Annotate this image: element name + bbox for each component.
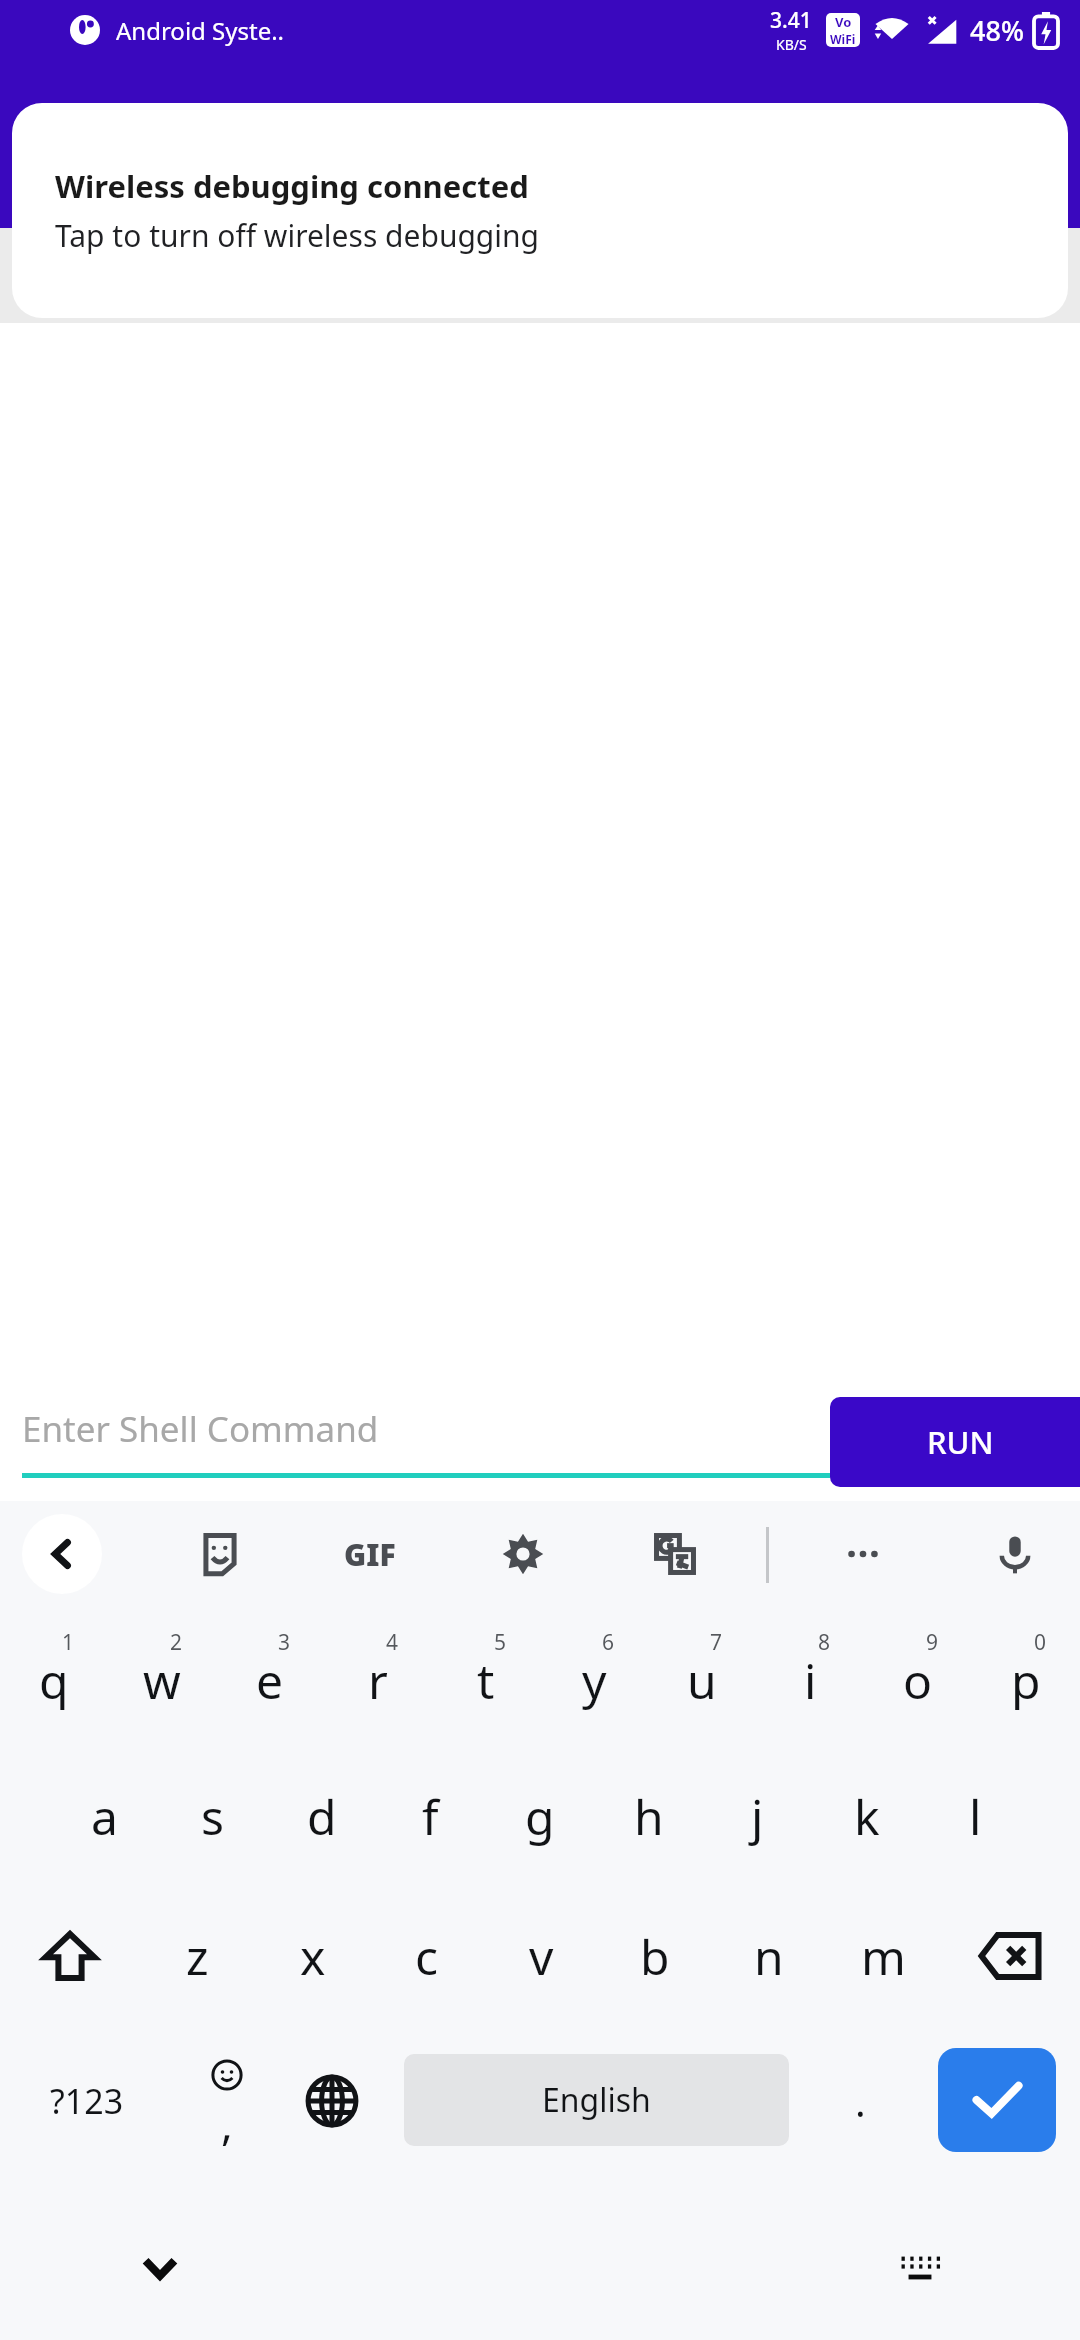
staticText: WiFi [830, 31, 856, 47]
button[interactable]: g [485, 1746, 594, 1886]
button[interactable]: f [376, 1746, 485, 1886]
other: Settings [501, 1532, 545, 1576]
button[interactable]: More options [823, 1514, 903, 1594]
staticText: 48% [970, 12, 1024, 49]
staticText: d [307, 1784, 337, 1849]
staticText: KB/S [776, 35, 807, 54]
staticText: . [855, 2074, 866, 2128]
staticText: u [687, 1648, 717, 1713]
staticText: , [221, 2093, 233, 2153]
staticText: z [186, 1924, 209, 1989]
button[interactable]: Enter Shell Command [22, 1381, 830, 1501]
button[interactable]: s [158, 1746, 267, 1886]
staticText: r [368, 1648, 388, 1713]
staticText: 2 [170, 1628, 183, 1657]
button[interactable]: x [255, 1886, 370, 2026]
other: More options [841, 1532, 885, 1576]
staticText: t [477, 1648, 495, 1713]
button[interactable]: c [370, 1886, 484, 2026]
button[interactable]: b [598, 1886, 712, 2026]
staticText: n [754, 1924, 784, 1989]
staticText: s [201, 1784, 224, 1849]
staticText: 7 [710, 1628, 723, 1657]
button[interactable]: j [703, 1746, 812, 1886]
staticText: ?123 [50, 2078, 124, 2124]
button[interactable]: Settings [483, 1514, 563, 1594]
staticText: j [751, 1784, 764, 1849]
staticText: 3.41 [770, 6, 812, 35]
button[interactable]: h [594, 1746, 703, 1886]
staticText: g [525, 1784, 555, 1849]
button[interactable]: 4 [324, 1606, 432, 1746]
staticText: x [300, 1924, 326, 1989]
button[interactable]: Change language [282, 2026, 382, 2176]
button[interactable]: Shift [0, 1886, 140, 2026]
button[interactable]: GIF [330, 1514, 410, 1594]
staticText: c [415, 1924, 439, 1989]
staticText: y [582, 1648, 607, 1713]
button[interactable]: Switch keyboard [880, 2228, 960, 2308]
staticText: 5 [494, 1628, 507, 1657]
staticText: Enter Shell Command [22, 1405, 379, 1453]
button[interactable]: 6 [540, 1606, 648, 1746]
button[interactable]: n [712, 1886, 826, 2026]
button[interactable]: RUN [830, 1397, 1080, 1487]
staticText: 3 [278, 1628, 291, 1657]
staticText: i [804, 1648, 817, 1713]
staticText: 1 [62, 1628, 75, 1657]
staticText: w [143, 1648, 181, 1713]
staticText: RUN [927, 1421, 994, 1463]
staticText: 9 [926, 1628, 939, 1657]
button[interactable]: 5 [432, 1606, 540, 1746]
button[interactable]: Back [22, 1514, 102, 1594]
staticText: f [422, 1784, 439, 1849]
staticText: m [861, 1924, 906, 1989]
button[interactable]: 1 [0, 1606, 108, 1746]
button[interactable]: 2 [108, 1606, 216, 1746]
button[interactable]: Enter [938, 2048, 1056, 2152]
staticText: v [529, 1924, 554, 1989]
staticText: English [542, 2078, 651, 2122]
staticText: b [640, 1924, 670, 1989]
other: Voice input [993, 1532, 1037, 1576]
staticText: 0 [1034, 1628, 1047, 1657]
staticText: 6 [602, 1628, 615, 1657]
button[interactable]: English [404, 2054, 789, 2146]
button[interactable]: 7 [648, 1606, 756, 1746]
staticText: Tap to turn off wireless debugging [55, 215, 540, 256]
button[interactable]: ?123 [22, 2026, 152, 2176]
button[interactable]: Backspace [940, 1886, 1080, 2026]
staticText: Android Syste.. [116, 14, 285, 47]
staticText: k [854, 1784, 880, 1849]
staticText: q [39, 1648, 69, 1713]
staticText: e [256, 1648, 284, 1713]
staticText: a [91, 1784, 118, 1849]
button[interactable]: 9 [864, 1606, 972, 1746]
button[interactable]: Translate [635, 1514, 715, 1594]
button[interactable]: d [267, 1746, 376, 1886]
button[interactable]: v [484, 1886, 598, 2026]
button[interactable]: z [140, 1886, 255, 2026]
button[interactable]: . [812, 2026, 908, 2176]
staticText: Vo [835, 13, 852, 31]
staticText: l [969, 1784, 982, 1849]
staticText: p [1011, 1648, 1041, 1713]
staticText: 8 [818, 1628, 831, 1657]
staticText: GIF [344, 1534, 396, 1575]
other: Stickers [198, 1532, 242, 1576]
button[interactable]: 8 [756, 1606, 864, 1746]
button[interactable]: 0 [972, 1606, 1080, 1746]
staticText: o [903, 1648, 933, 1713]
button[interactable]: l [921, 1746, 1030, 1886]
button[interactable]: Voice input [975, 1514, 1055, 1594]
button[interactable]: Wireless debugging connected [12, 103, 1068, 318]
other: Translate [653, 1532, 697, 1576]
button[interactable]: a [50, 1746, 158, 1886]
button[interactable]: , [172, 2026, 282, 2176]
button[interactable]: 3 [216, 1606, 324, 1746]
staticText: Wireless debugging connected [55, 165, 529, 207]
button[interactable]: Hide keyboard [120, 2228, 200, 2308]
button[interactable]: Stickers [180, 1514, 260, 1594]
button[interactable]: k [812, 1746, 921, 1886]
button[interactable]: m [826, 1886, 940, 2026]
